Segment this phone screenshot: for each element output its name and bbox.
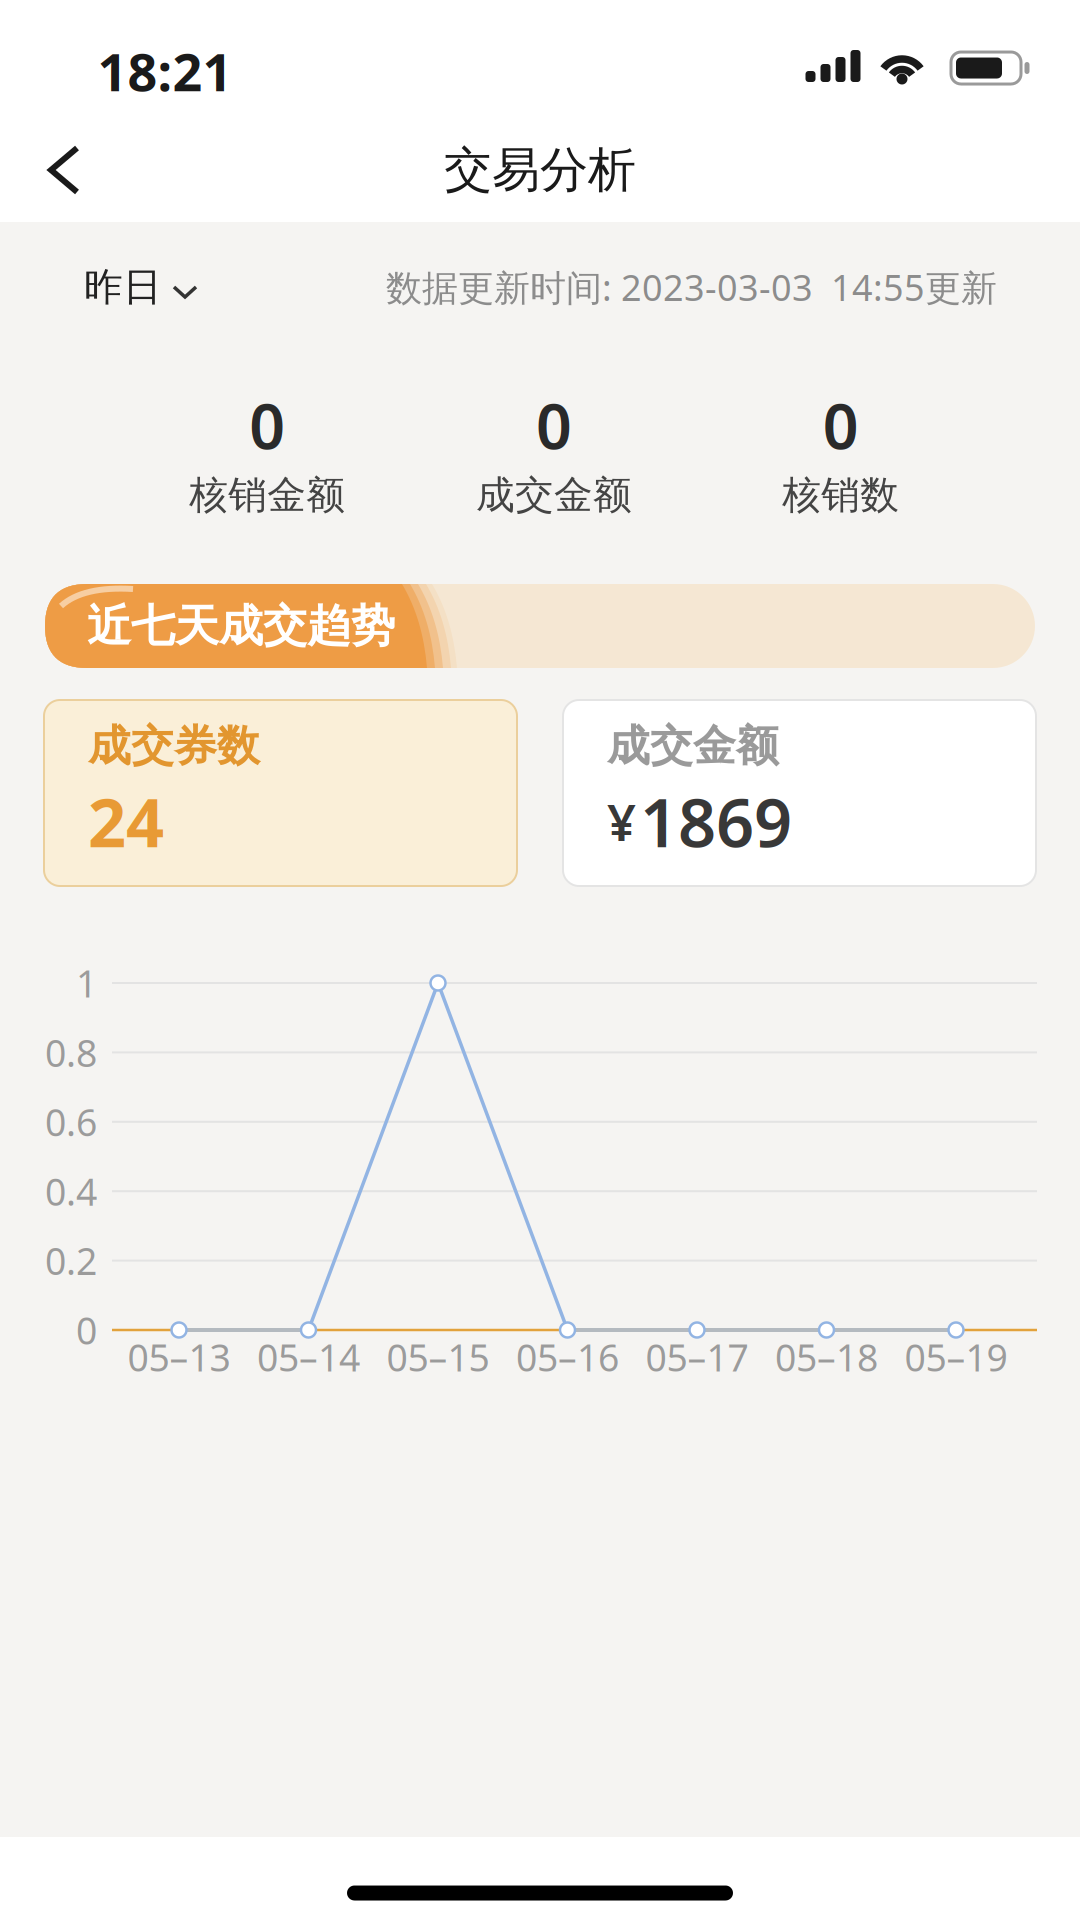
- staticText: 18:21: [97, 36, 232, 106]
- staticText: 昨日: [84, 263, 162, 311]
- staticText: 0.8: [45, 1028, 97, 1077]
- staticText: 24: [88, 777, 164, 865]
- staticText: 1: [76, 958, 97, 1008]
- staticText: 交易分析: [444, 140, 636, 199]
- staticText: 成交券数: [88, 720, 260, 772]
- staticText: 近七天成交趋势: [87, 599, 395, 653]
- staticText: 0: [823, 383, 859, 467]
- button[interactable]: 成交券数: [44, 700, 517, 886]
- staticText: 0: [76, 1305, 97, 1355]
- staticText: 核销数: [782, 471, 899, 519]
- staticText: ¥: [607, 788, 636, 855]
- staticText: 05–16: [516, 1332, 619, 1382]
- staticText: 05–19: [904, 1332, 1007, 1382]
- button[interactable]: [46, 144, 82, 196]
- staticText: 0: [536, 383, 572, 467]
- staticText: 05–18: [775, 1332, 878, 1382]
- staticText: 05–17: [645, 1332, 748, 1382]
- staticText: 核销金额: [189, 471, 345, 519]
- staticText: 0.4: [45, 1166, 97, 1216]
- staticText: 05–15: [386, 1332, 489, 1382]
- button[interactable]: 成交金额: [563, 700, 1036, 886]
- staticText: 05–13: [127, 1332, 230, 1382]
- staticText: 0.6: [45, 1097, 97, 1147]
- staticText: 0.2: [45, 1236, 97, 1285]
- button[interactable]: 昨日: [84, 263, 198, 311]
- staticText: 成交金额: [607, 720, 779, 772]
- staticText: 05–14: [257, 1332, 360, 1382]
- staticText: 数据更新时间: 2023-03-03 14:55更新: [386, 263, 997, 311]
- staticText: 1869: [640, 777, 792, 865]
- staticText: 0: [249, 383, 285, 467]
- staticText: 成交金额: [476, 471, 632, 519]
